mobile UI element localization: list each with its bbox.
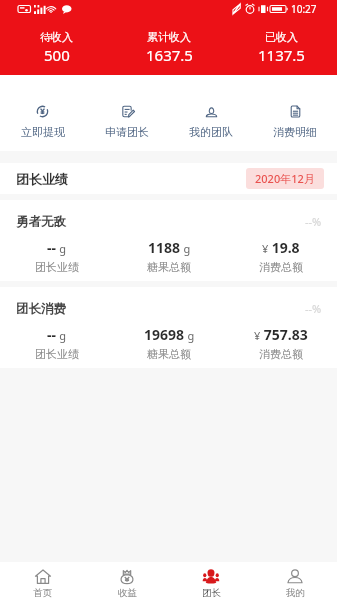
staticText: 1188 g — [148, 238, 191, 257]
staticText: 1637.5 — [146, 45, 193, 65]
staticText: 1137.5 — [258, 45, 305, 65]
staticText: 500 — [44, 45, 70, 65]
staticText: -- g — [47, 325, 67, 344]
staticText: 勇者无敌 — [16, 214, 66, 230]
other: 我的 — [287, 569, 303, 585]
staticText: ¥ 19.8 — [262, 238, 300, 257]
staticText: 消费总额 — [259, 260, 303, 274]
other: 收益 — [119, 569, 135, 585]
button[interactable]: 立即提现 — [0, 75, 85, 139]
staticText: 消费总额 — [259, 347, 303, 361]
staticText: ¥ 757.83 — [254, 325, 308, 344]
staticText: 待收入 — [40, 30, 73, 44]
staticText: 团长消费 — [16, 301, 66, 317]
staticText: 2020年12月 — [255, 171, 315, 186]
staticText: 已收入 — [265, 30, 298, 44]
button[interactable]: 我的 — [253, 564, 337, 599]
staticText: 收益 — [118, 587, 137, 599]
staticText: 团长业绩 — [35, 347, 79, 361]
staticText: 立即提现 — [21, 125, 65, 139]
staticText: 糖果总额 — [147, 260, 191, 274]
staticText: 团长 — [202, 587, 221, 599]
button[interactable]: 团长 — [169, 564, 253, 599]
staticText: 团长业绩 — [16, 171, 68, 187]
staticText: 19698 g — [144, 325, 195, 344]
button[interactable]: 收益 — [85, 564, 169, 599]
staticText: 我的团队 — [189, 125, 233, 139]
other: 团长 — [203, 569, 219, 585]
staticText: -- g — [47, 238, 67, 257]
staticText: 团长业绩 — [35, 260, 79, 274]
button[interactable]: 首页 — [0, 564, 85, 599]
staticText: 累计收入 — [147, 30, 191, 44]
staticText: --% — [305, 214, 322, 229]
other: 首页 — [35, 569, 51, 585]
button[interactable]: 消费明细 — [253, 75, 337, 139]
button[interactable]: 申请团长 — [85, 75, 169, 139]
button[interactable]: 2020年12月 — [246, 168, 324, 189]
staticText: 申请团长 — [105, 125, 149, 139]
staticText: 消费明细 — [273, 125, 317, 139]
button[interactable]: 我的团队 — [169, 75, 253, 139]
staticText: 糖果总额 — [147, 347, 191, 361]
staticText: 10:27 — [291, 2, 317, 16]
staticText: 我的 — [286, 587, 305, 599]
staticText: --% — [305, 301, 322, 316]
staticText: 首页 — [33, 587, 52, 599]
